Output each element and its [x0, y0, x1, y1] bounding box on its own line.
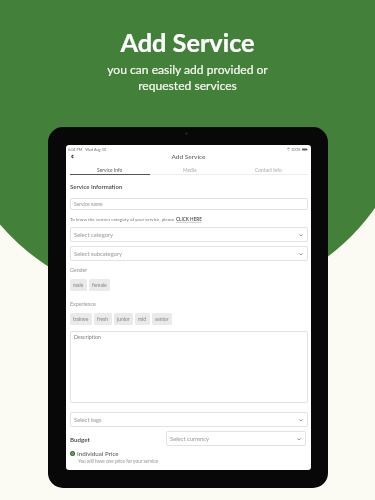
button[interactable]: male	[70, 279, 87, 291]
staticText: junior	[117, 316, 130, 322]
button[interactable]: Individual Price	[70, 450, 119, 457]
button[interactable]: Contact Info	[229, 167, 308, 175]
staticText: Description	[74, 334, 101, 340]
button[interactable]: fresh	[94, 313, 112, 325]
button[interactable]: Description	[70, 331, 308, 403]
staticText: Media	[183, 167, 197, 173]
staticText: Service name	[74, 201, 103, 207]
button[interactable]: mid	[135, 313, 150, 325]
button[interactable]: female	[89, 279, 110, 291]
staticText: Add Service	[0, 27, 375, 57]
button[interactable]: Select currency	[166, 431, 306, 446]
button[interactable]: Service Info	[70, 167, 150, 175]
staticText: female	[92, 282, 107, 288]
staticText: Individual Price	[77, 450, 119, 457]
button[interactable]: junior	[114, 313, 133, 325]
button[interactable]: Media	[150, 167, 229, 175]
staticText: you can easily add provided or requested…	[0, 62, 375, 93]
staticText: trainee	[73, 316, 89, 322]
staticText: Service Information	[70, 183, 123, 190]
staticText: You will have one price for your service	[78, 458, 158, 464]
staticText: Select category	[74, 231, 114, 238]
staticText: Select currency	[170, 435, 210, 442]
staticText: Add Service	[66, 153, 311, 161]
staticText: To know the correct category of your ser…	[70, 216, 176, 222]
button[interactable]: Select subcategory	[70, 246, 308, 261]
staticText: male	[73, 282, 84, 288]
button[interactable]: senior	[152, 313, 172, 325]
staticText: Gender	[70, 267, 88, 273]
staticText: 100%	[291, 147, 301, 152]
staticText: Select tags	[74, 416, 102, 423]
button[interactable]: trainee	[70, 313, 92, 325]
button[interactable]: Select tags	[70, 412, 308, 427]
staticText: mid	[138, 316, 147, 322]
staticText: Select subcategory	[74, 250, 123, 257]
staticText: Contact Info	[255, 167, 282, 173]
staticText: Budget	[70, 436, 90, 443]
staticText: 6:04 PM Wed Aug 30	[68, 147, 106, 152]
staticText: Service Info	[97, 167, 123, 173]
staticText: Experience	[70, 301, 96, 307]
staticText: senior	[155, 316, 169, 322]
button[interactable]: Select category	[70, 227, 308, 242]
staticText: CLICK HERE	[176, 216, 202, 222]
button[interactable]: Service name	[70, 198, 308, 210]
staticText: fresh	[97, 316, 109, 322]
button[interactable]: Back	[69, 153, 76, 160]
